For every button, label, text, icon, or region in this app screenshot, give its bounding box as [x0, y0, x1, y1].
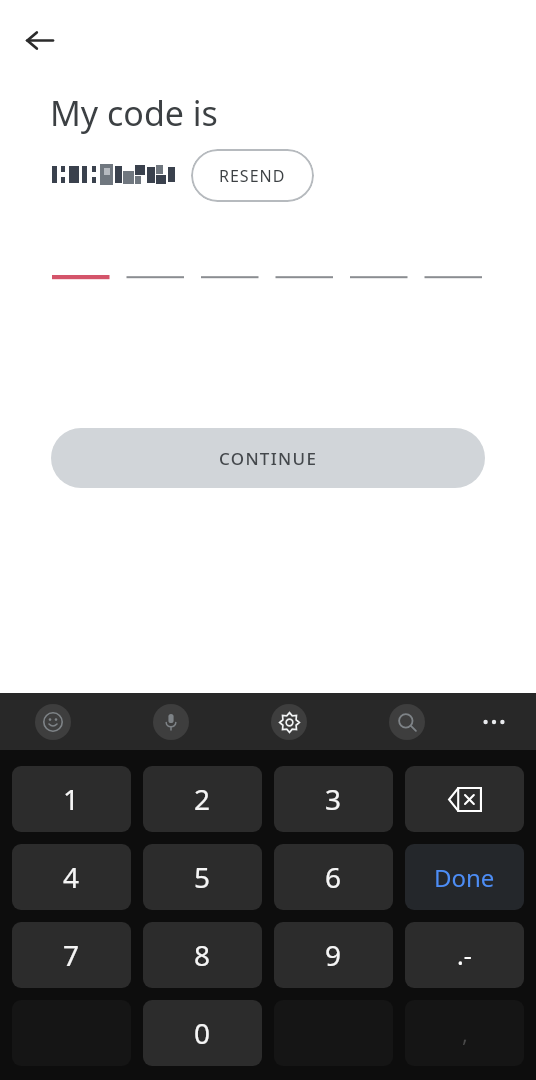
button[interactable]: 1 — [12, 766, 131, 832]
staticText: 1 — [63, 780, 80, 818]
button[interactable]: 5 — [143, 844, 262, 910]
staticText: 0 — [194, 1014, 211, 1052]
button[interactable]: 4 — [12, 844, 131, 910]
staticText: .- — [457, 938, 472, 972]
staticText: 5 — [194, 858, 211, 896]
button[interactable]: .- — [405, 922, 524, 988]
button[interactable]: Voice input — [153, 704, 189, 740]
button[interactable]: 0 — [143, 1000, 262, 1066]
staticText: 8 — [194, 936, 211, 974]
button[interactable]: CONTINUE — [51, 428, 485, 488]
button[interactable]: RESEND — [191, 149, 314, 202]
button[interactable]: 8 — [143, 922, 262, 988]
staticText: RESEND — [219, 165, 286, 187]
staticText: CONTINUE — [219, 447, 318, 470]
button[interactable]: Emoji — [35, 704, 71, 740]
button[interactable]: 9 — [274, 922, 393, 988]
staticText: My code is — [50, 90, 218, 136]
button[interactable]: 2 — [143, 766, 262, 832]
button[interactable]: Delete — [405, 766, 524, 832]
button[interactable]: 6 — [274, 844, 393, 910]
staticText: 9 — [325, 936, 342, 974]
button[interactable]: 3 — [274, 766, 393, 832]
button[interactable]: 7 — [12, 922, 131, 988]
button[interactable]: More options — [476, 704, 512, 740]
button[interactable]: Search — [389, 704, 425, 740]
staticText: , — [462, 1018, 468, 1048]
button[interactable]: Done — [405, 844, 524, 910]
staticText: 3 — [325, 780, 342, 818]
staticText: 6 — [325, 858, 342, 896]
staticText: 7 — [63, 936, 80, 974]
staticText: 4 — [63, 858, 80, 896]
button[interactable]: Back — [13, 14, 65, 66]
button[interactable]: Settings — [271, 704, 307, 740]
staticText: 2 — [194, 780, 211, 818]
staticText: Done — [434, 861, 495, 894]
